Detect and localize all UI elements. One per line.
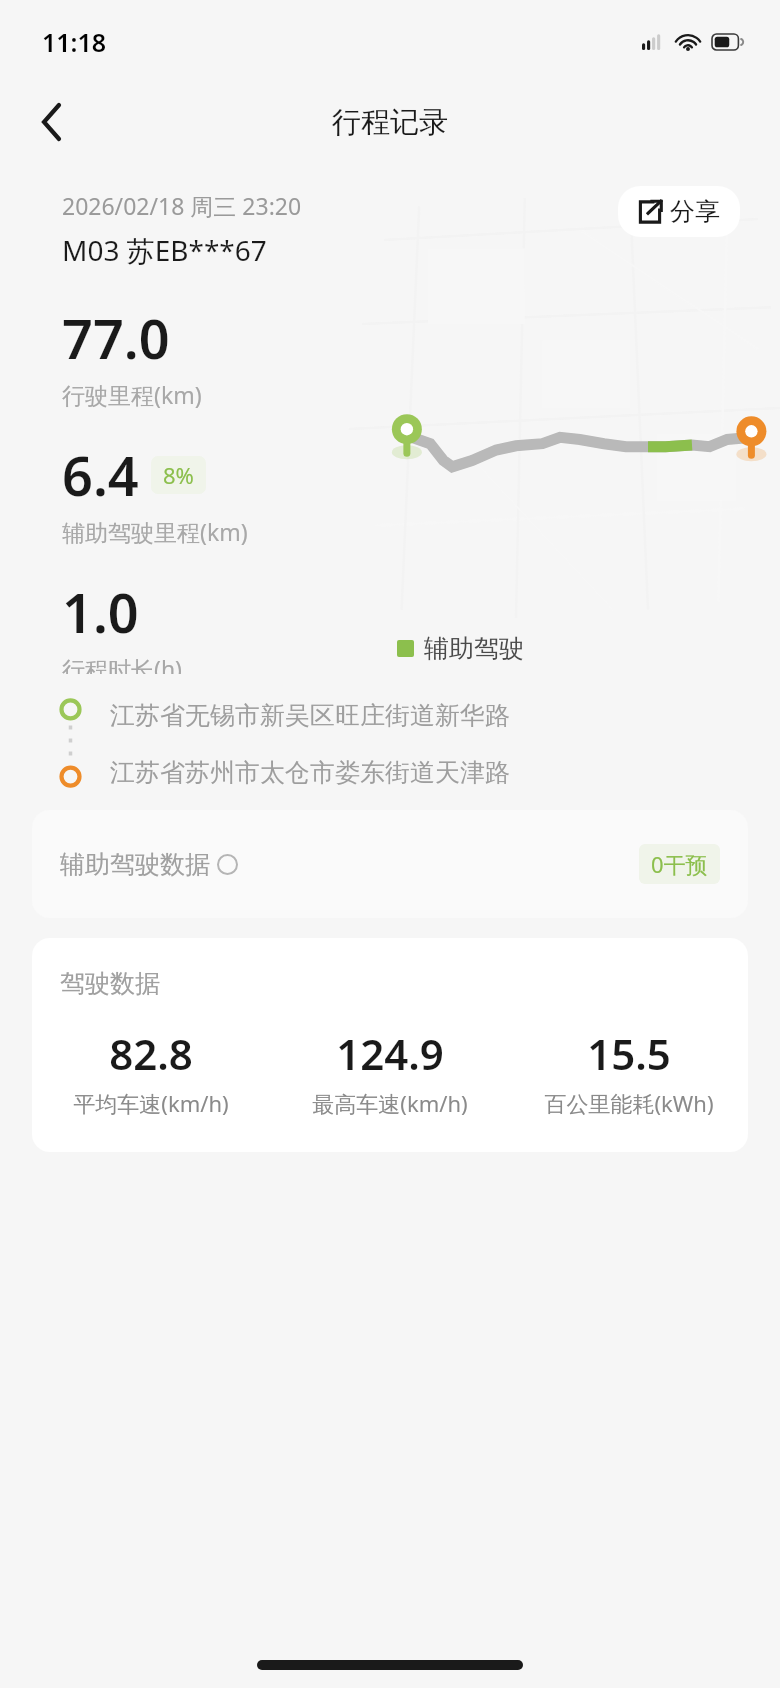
staticText: 江苏省无锡市新吴区旺庄街道新华路 [110,700,510,731]
button[interactable]: 分享 [618,186,740,237]
staticText: 百公里能耗(kWh) [544,1088,714,1118]
staticText: 15.5 [587,1025,671,1082]
staticText: 平均车速(km/h) [73,1088,229,1118]
staticText: 6.4 [62,438,139,512]
staticText: 0干预 [651,849,708,879]
staticText: 2026/02/18 周三 23:20 [62,190,302,221]
staticText: M03 苏EB***67 [62,231,267,269]
staticText: 8% [163,460,194,490]
staticText: 辅助驾驶里程(km) [62,516,248,547]
staticText: 行程记录 [332,104,448,141]
staticText: 77.0 [62,301,170,375]
button[interactable]: 辅助驾驶数据 [32,810,748,918]
staticText: 辅助驾驶数据 [60,849,210,880]
staticText: 1.0 [62,575,139,649]
staticText: 行驶里程(km) [62,379,202,410]
button[interactable]: Back [24,94,80,150]
staticText: 最高车速(km/h) [312,1088,468,1118]
staticText: 辅助驾驶 [424,633,524,664]
staticText: 江苏省苏州市太仓市娄东街道天津路 [110,757,510,788]
staticText: 124.9 [336,1025,444,1082]
staticText: 11:18 [42,25,107,59]
staticText: 分享 [670,196,720,227]
staticText: 驾驶数据 [60,968,160,999]
staticText: 82.8 [109,1025,193,1082]
staticText: 行程时长(h) [62,653,183,674]
